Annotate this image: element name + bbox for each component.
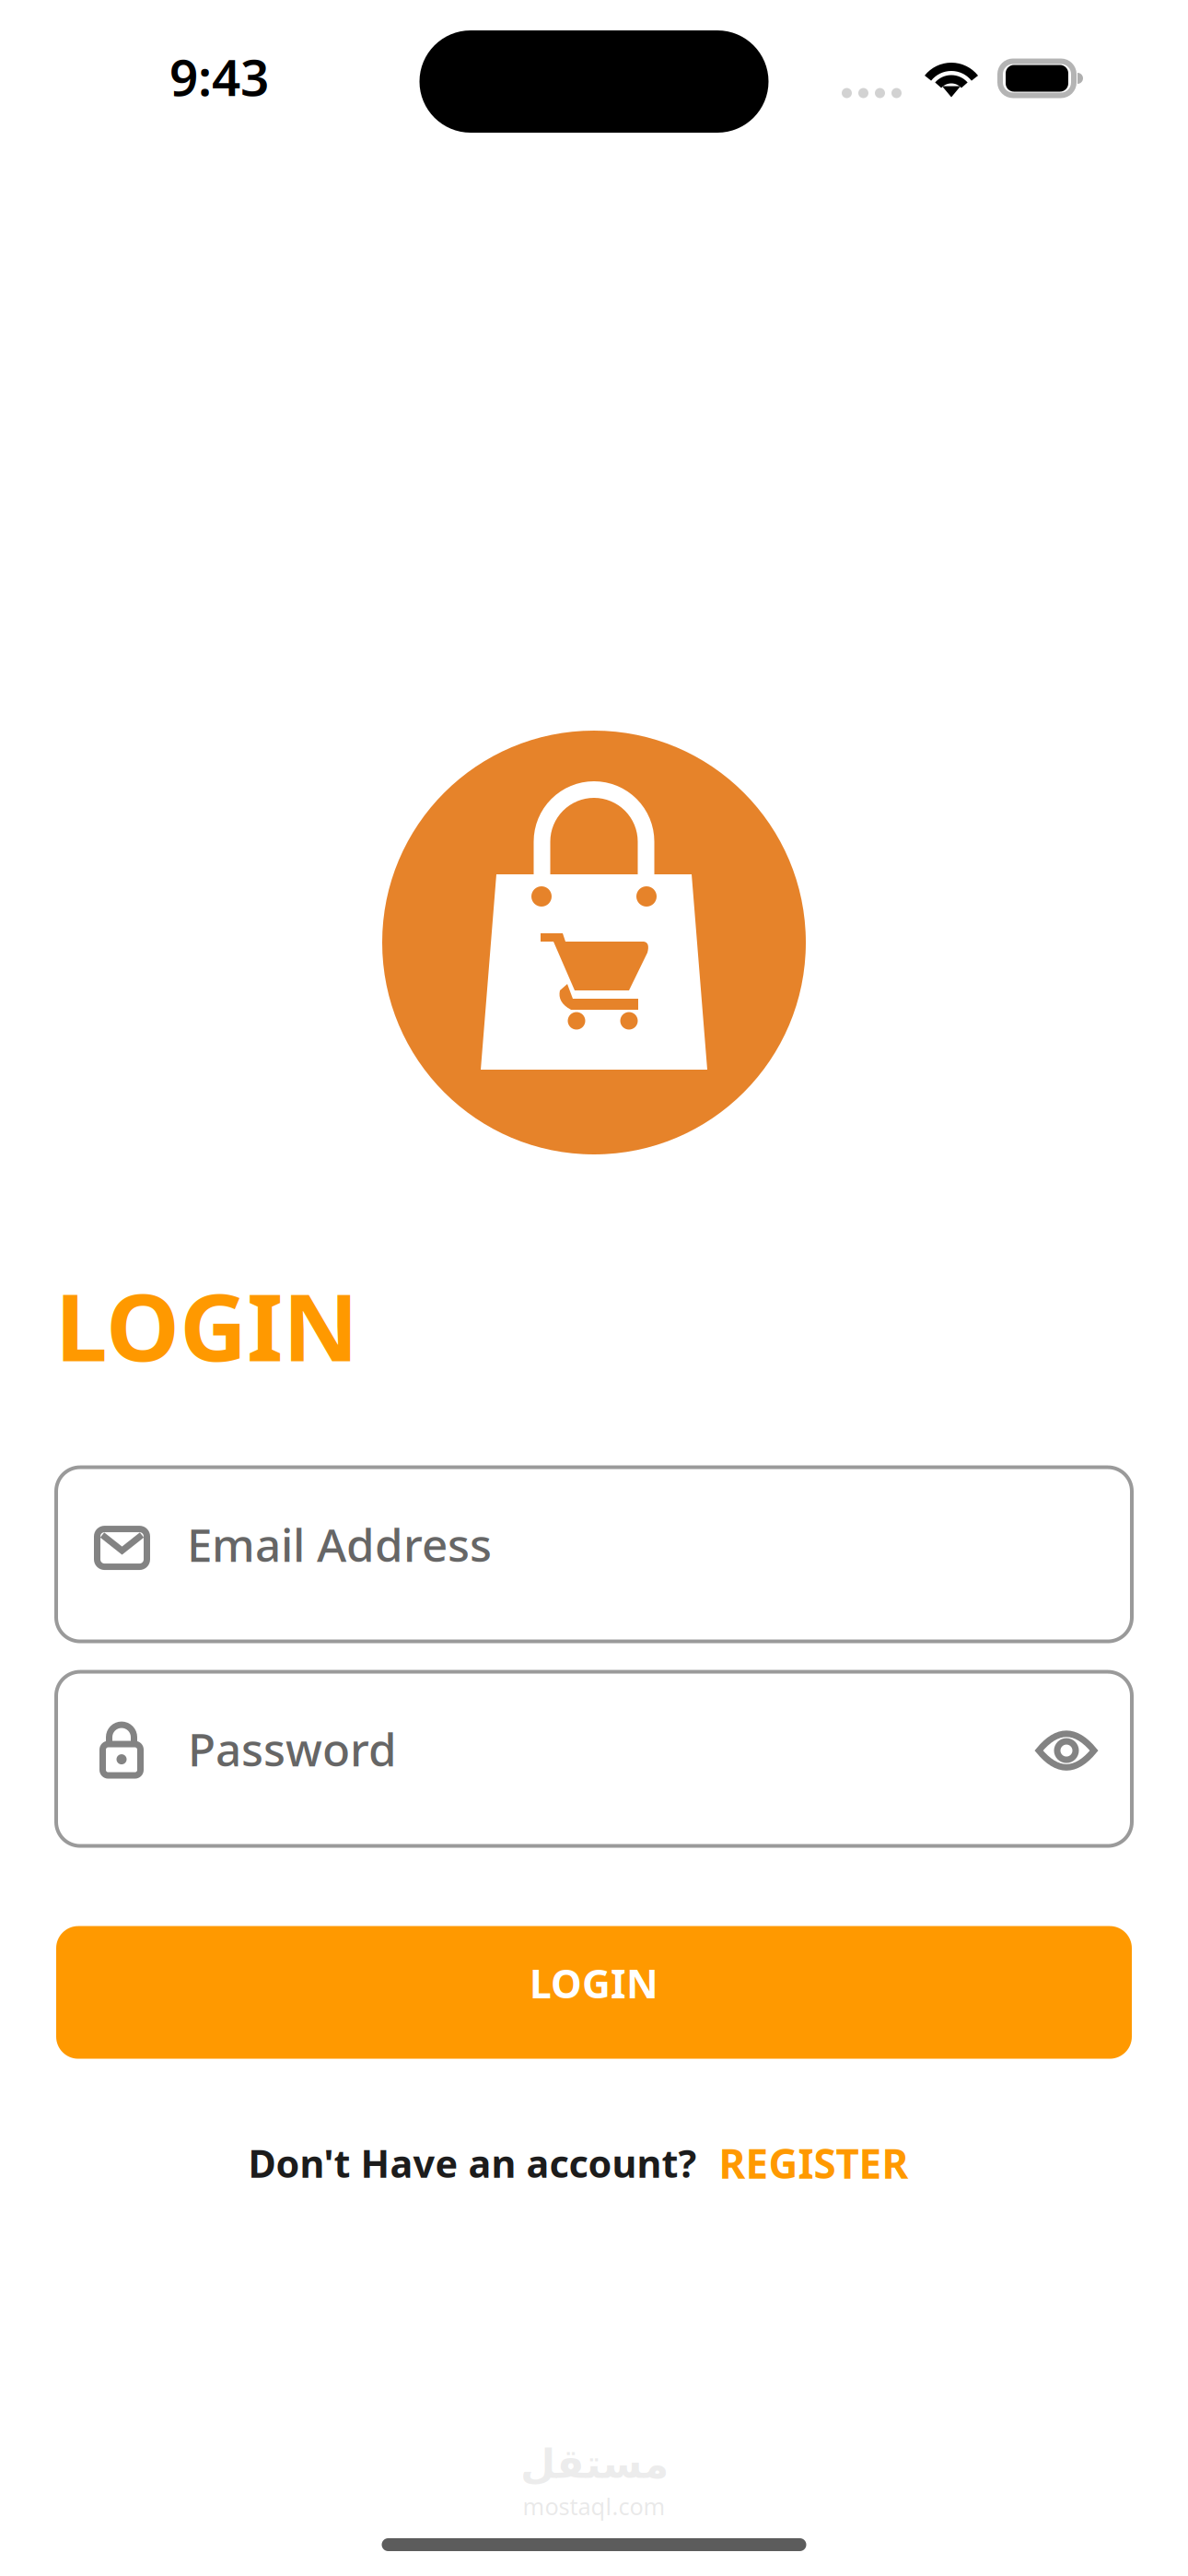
button[interactable]: LOGIN xyxy=(56,1926,1132,2059)
staticText: مستقل xyxy=(520,2441,668,2487)
button[interactable]: Show password xyxy=(1036,1730,1097,1771)
button[interactable]: Password xyxy=(56,1672,1132,1846)
button[interactable]: REGISTER xyxy=(719,2136,908,2190)
staticText: Email Address xyxy=(187,1514,492,1574)
staticText: 9:43 xyxy=(169,43,269,110)
staticText: LOGIN xyxy=(55,1263,358,1387)
staticText: mostaql.com xyxy=(523,2491,665,2522)
staticText: Don't Have an account? xyxy=(248,2138,697,2188)
button[interactable]: Email Address xyxy=(56,1467,1132,1641)
staticText: REGISTER xyxy=(719,2136,908,2190)
staticText: LOGIN xyxy=(530,1957,658,2009)
staticText: Password xyxy=(188,1719,397,1779)
